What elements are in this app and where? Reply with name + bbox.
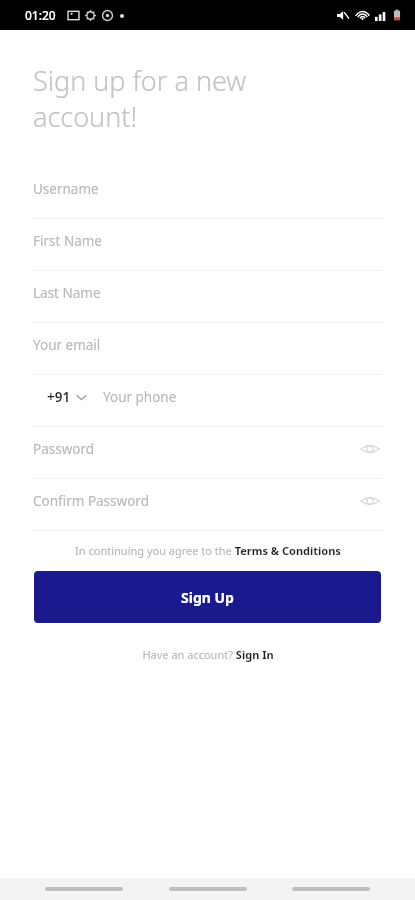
button[interactable]: Confirm Password — [33, 479, 382, 531]
button[interactable]: Navigation button — [45, 879, 123, 899]
staticText: In continuing you agree to the Terms & C… — [75, 543, 341, 558]
button[interactable]: Username — [33, 167, 382, 219]
button[interactable]: Have an account? Sign In — [0, 647, 415, 662]
button[interactable]: First Name — [33, 219, 382, 271]
button[interactable]: Your email — [33, 323, 382, 375]
staticText: Sign Up — [181, 588, 234, 607]
staticText: Have an account? Sign In — [142, 647, 274, 662]
staticText: Sign up for a new account! — [33, 62, 247, 135]
button[interactable]: Password — [33, 427, 382, 479]
button[interactable]: +91 — [33, 388, 87, 406]
staticText: Your phone — [103, 388, 177, 406]
staticText: 01:20 — [25, 7, 56, 23]
staticText: Password — [33, 440, 95, 458]
staticText: Last Name — [33, 284, 101, 302]
staticText: Confirm Password — [33, 492, 149, 510]
staticText: +91 — [47, 388, 71, 406]
button[interactable]: Sign Up — [34, 571, 381, 623]
staticText: Your email — [33, 336, 101, 354]
button[interactable]: Last Name — [33, 271, 382, 323]
staticText: Username — [33, 180, 99, 198]
button[interactable]: Show password — [358, 437, 382, 461]
button[interactable]: In continuing you agree to the Terms & C… — [0, 543, 415, 558]
button[interactable]: Navigation button — [292, 879, 370, 899]
button[interactable]: Show password — [358, 489, 382, 513]
staticText: First Name — [33, 232, 102, 250]
button[interactable]: Navigation button — [169, 879, 247, 899]
